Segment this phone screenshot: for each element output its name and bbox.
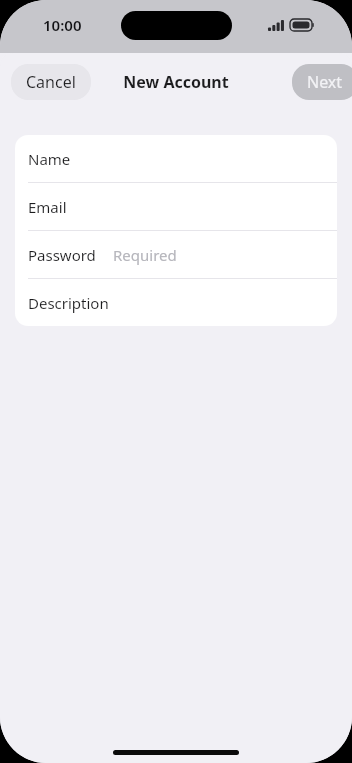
staticText: Email [28,197,67,217]
button[interactable]: Password [15,231,337,278]
staticText: 10:00 [43,15,82,35]
button[interactable]: Email [15,183,337,230]
button[interactable]: Next [292,64,352,100]
staticText: Required [113,245,177,265]
staticText: Name [28,149,71,169]
button[interactable]: Name [15,135,337,182]
staticText: New Account [123,71,229,93]
staticText: Description [28,293,109,313]
button[interactable]: Description [15,279,337,326]
staticText: Next [307,71,343,93]
button[interactable]: Cancel [11,64,91,100]
staticText: Password [28,245,96,265]
staticText: Cancel [26,71,76,93]
